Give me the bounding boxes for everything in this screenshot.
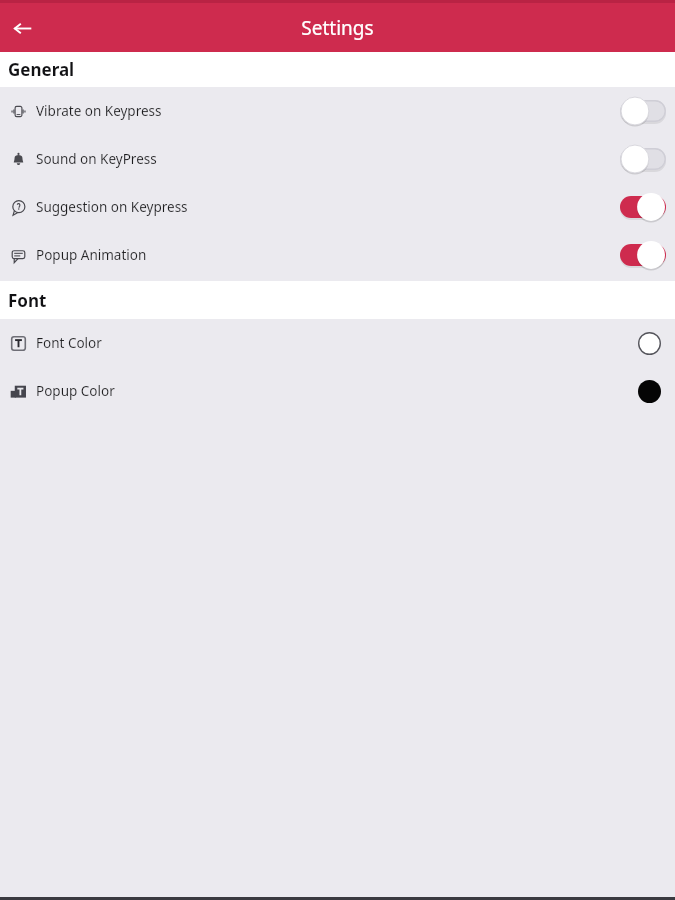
button[interactable]: Font Color [0, 319, 675, 367]
staticText: Vibrate on Keypress [36, 102, 162, 120]
staticText: Popup Color [36, 382, 115, 400]
button[interactable]: Back [0, 6, 44, 50]
button[interactable]: Sound on KeyPress [0, 135, 675, 183]
button[interactable]: Off [620, 96, 666, 126]
button[interactable]: Off [620, 144, 666, 174]
button[interactable]: Vibrate on Keypress [0, 87, 675, 135]
button[interactable]: Popup Color [0, 367, 675, 415]
button[interactable]: Suggestion on Keypress [0, 183, 675, 231]
button[interactable]: On [620, 192, 666, 222]
button[interactable]: Pick color [632, 326, 666, 360]
staticText: Suggestion on Keypress [36, 198, 188, 216]
button[interactable]: Pick color [632, 374, 666, 408]
staticText: Sound on KeyPress [36, 150, 157, 168]
staticText: Font [8, 289, 47, 312]
staticText: Popup Animation [36, 246, 147, 264]
staticText: Settings [301, 15, 374, 41]
staticText: General [8, 58, 75, 81]
button[interactable]: Popup Animation [0, 231, 675, 279]
staticText: Font Color [36, 334, 102, 352]
button[interactable]: On [620, 240, 666, 270]
